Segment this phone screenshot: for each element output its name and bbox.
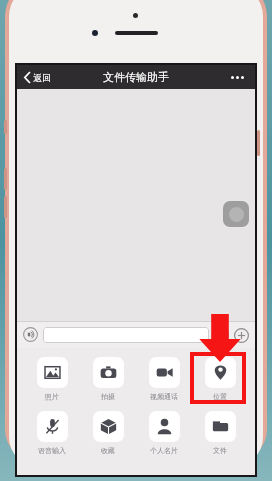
staticText: 拍摄 — [101, 392, 115, 401]
button[interactable]: 收藏 — [80, 411, 136, 455]
button[interactable]: More attachments — [232, 326, 250, 344]
button[interactable]: Emoji — [213, 326, 230, 343]
button[interactable]: Voice message — [22, 326, 39, 343]
button[interactable]: 照片 — [24, 357, 80, 401]
staticText: 照片 — [45, 392, 59, 401]
staticText: 语音输入 — [38, 446, 66, 455]
button[interactable]: 返回 — [22, 69, 53, 86]
button[interactable]: 视频通话 — [136, 357, 192, 401]
staticText: 收藏 — [101, 446, 115, 455]
staticText: 文件 — [213, 446, 227, 455]
button[interactable]: 语音输入 — [24, 411, 80, 455]
button[interactable] — [43, 327, 209, 343]
button[interactable]: 拍摄 — [80, 357, 136, 401]
staticText: 个人名片 — [150, 446, 178, 455]
button[interactable]: 个人名片 — [136, 411, 192, 455]
button[interactable]: 位置 — [192, 357, 248, 401]
staticText: 位置 — [213, 392, 227, 401]
staticText: 视频通话 — [150, 392, 178, 401]
staticText: 文件传输助手 — [103, 70, 169, 84]
button[interactable]: More options — [227, 73, 248, 82]
button[interactable]: 文件 — [192, 411, 248, 455]
staticText: 返回 — [33, 72, 51, 83]
